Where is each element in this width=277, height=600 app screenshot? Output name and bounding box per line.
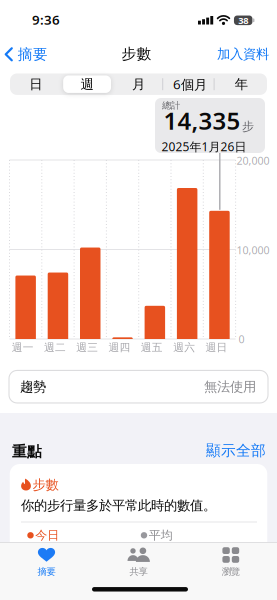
staticText: 趨勢 [20,378,46,395]
staticText: 步數 [32,476,58,493]
staticText: 週三 [76,341,98,354]
staticText: 月 [132,76,145,92]
button[interactable]: 6個月 [164,73,216,95]
staticText: 平均 [149,528,173,543]
staticText: 週二 [44,341,66,354]
staticText: 顯示全部 [206,441,266,459]
staticText: 週一 [12,341,34,354]
staticText: 週六 [173,341,195,354]
staticText: 加入資料 [217,46,269,62]
staticText: 無法使用 [204,378,256,395]
staticText: 年 [235,76,248,92]
button[interactable]: 顯示全部 [176,441,266,459]
staticText: 週 [81,76,94,92]
staticText: 日 [29,76,42,92]
staticText: 今日 [35,528,59,543]
staticText: 6個月 [173,75,207,93]
button[interactable]: 日 [10,73,61,95]
button[interactable]: 年 [216,73,267,95]
button[interactable]: 趨勢 [9,370,268,403]
button[interactable] [10,464,267,600]
staticText: 14,335 [163,105,240,136]
staticText: 步 [242,119,254,134]
button[interactable]: 加入資料 [199,46,269,62]
staticText: 週四 [108,341,130,354]
button[interactable]: 共享 [98,545,178,579]
button[interactable]: 摘要 [6,545,86,579]
staticText: 週日 [205,341,227,354]
staticText: 20,000 [236,153,269,168]
button[interactable]: 月 [113,73,164,95]
staticText: 週五 [141,341,163,354]
staticText: 步數 [121,45,151,63]
staticText: 瀏覽 [222,566,240,577]
button[interactable]: 摘要 [4,45,48,63]
staticText: 0 [238,332,244,346]
staticText: 共享 [129,566,147,577]
staticText: 重點 [12,442,42,460]
staticText: 你的步行量多於平常此時的數值。 [21,497,216,514]
button[interactable]: 週 [61,73,113,95]
staticText: 總計 [162,100,180,111]
staticText: 摘要 [37,566,55,577]
staticText: 10,000 [236,243,269,257]
staticText: 2025年1月26日 [161,138,246,154]
button[interactable]: 瀏覽 [191,545,271,579]
staticText: 38 [238,14,248,26]
staticText: 摘要 [18,45,48,63]
staticText: 9:36 [32,11,60,28]
